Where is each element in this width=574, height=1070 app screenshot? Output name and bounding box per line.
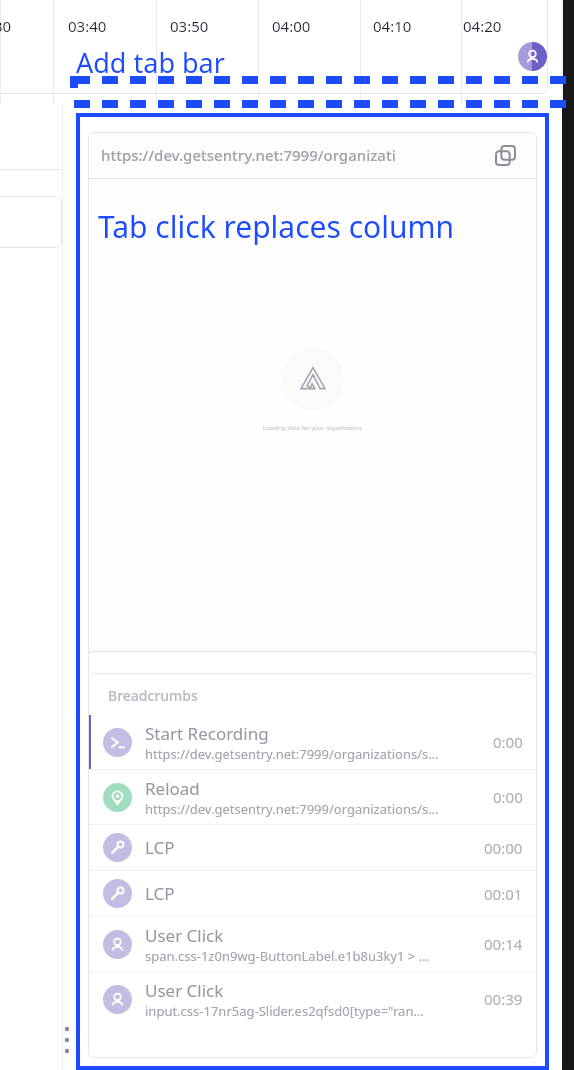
- staticText: Add tab bar: [76, 44, 225, 81]
- staticText: 04:22: [245, 732, 289, 755]
- staticText: https://dev.getsentry.net:7999/organizat…: [101, 145, 473, 165]
- staticText: 00:14: [484, 934, 523, 954]
- staticText: Start Recording: [145, 722, 269, 745]
- staticText: 04:10: [373, 16, 412, 36]
- button[interactable]: Play: [141, 702, 185, 740]
- button[interactable]: Fullscreen: [479, 702, 523, 740]
- button[interactable]: User account: [518, 42, 547, 71]
- staticText: 00:01: [484, 884, 523, 904]
- staticText: https://dev.getsentry.net:7999/organizat…: [145, 800, 439, 818]
- staticText: 03:40: [68, 16, 107, 36]
- staticText: 30: [0, 16, 12, 36]
- staticText: LCP: [145, 836, 175, 859]
- button[interactable]: Next: [186, 702, 230, 740]
- staticText: 00:00: [484, 838, 523, 858]
- staticText: input.css-17nr5ag-Slider.es2qfsd0[type="…: [145, 1002, 424, 1020]
- button[interactable]: Start Recording: [88, 715, 537, 769]
- staticText: Loading data for your organization.: [263, 424, 363, 432]
- button[interactable]: User Click: [88, 917, 537, 971]
- staticText: 04:00: [272, 16, 311, 36]
- staticText: 00:39: [484, 989, 523, 1009]
- button[interactable]: User Click: [88, 972, 537, 1026]
- button[interactable]: Reload: [88, 770, 537, 824]
- button[interactable]: Restart: [96, 702, 140, 740]
- staticText: Reload: [145, 777, 200, 800]
- staticText: LCP: [145, 882, 175, 905]
- staticText: Breadcrumbs: [108, 686, 198, 705]
- button[interactable]: LCP: [88, 825, 537, 870]
- button[interactable]: Copy URL: [473, 132, 537, 178]
- staticText: User Click: [145, 979, 224, 1002]
- staticText: 0:00: [493, 787, 523, 807]
- staticText: /: [244, 709, 251, 732]
- staticText: span.css-1z0n9wg-ButtonLabel.e1b8u3ky1 >…: [145, 947, 429, 965]
- staticText: Tab click replaces column: [98, 206, 455, 247]
- staticText: 03:50: [170, 16, 209, 36]
- staticText: https://dev.getsentry.net:7999/organizat…: [145, 745, 439, 763]
- button[interactable]: LCP: [88, 871, 537, 916]
- staticText: 04:20: [463, 16, 502, 36]
- staticText: 0:00: [493, 732, 523, 752]
- staticText: User Click: [145, 924, 224, 947]
